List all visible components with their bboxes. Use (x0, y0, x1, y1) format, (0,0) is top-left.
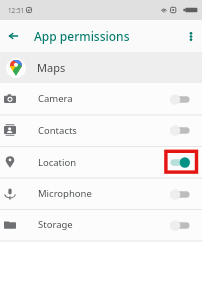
button[interactable]: Storage (0, 209, 202, 240)
button[interactable]: Microphone (0, 178, 202, 209)
button[interactable]: Contacts (0, 114, 202, 146)
button[interactable]: Permission off (167, 184, 193, 204)
staticText: Storage (38, 218, 73, 231)
staticText: App permissions (34, 28, 130, 44)
button[interactable]: Location permission on (167, 152, 193, 172)
button[interactable]: More options (181, 26, 201, 46)
button[interactable]: Permission off (167, 120, 193, 140)
button[interactable]: Location (0, 146, 202, 178)
staticText: Contacts (38, 124, 77, 137)
button[interactable]: Permission off (167, 89, 193, 109)
button[interactable]: Permission off (167, 215, 193, 235)
staticText: Maps (37, 60, 66, 75)
button[interactable]: Back (1, 24, 25, 48)
button[interactable]: Camera (0, 83, 202, 114)
staticText: Location (38, 156, 77, 169)
staticText: 12:51 (8, 6, 25, 15)
staticText: Microphone (38, 187, 92, 200)
staticText: Camera (38, 92, 73, 105)
